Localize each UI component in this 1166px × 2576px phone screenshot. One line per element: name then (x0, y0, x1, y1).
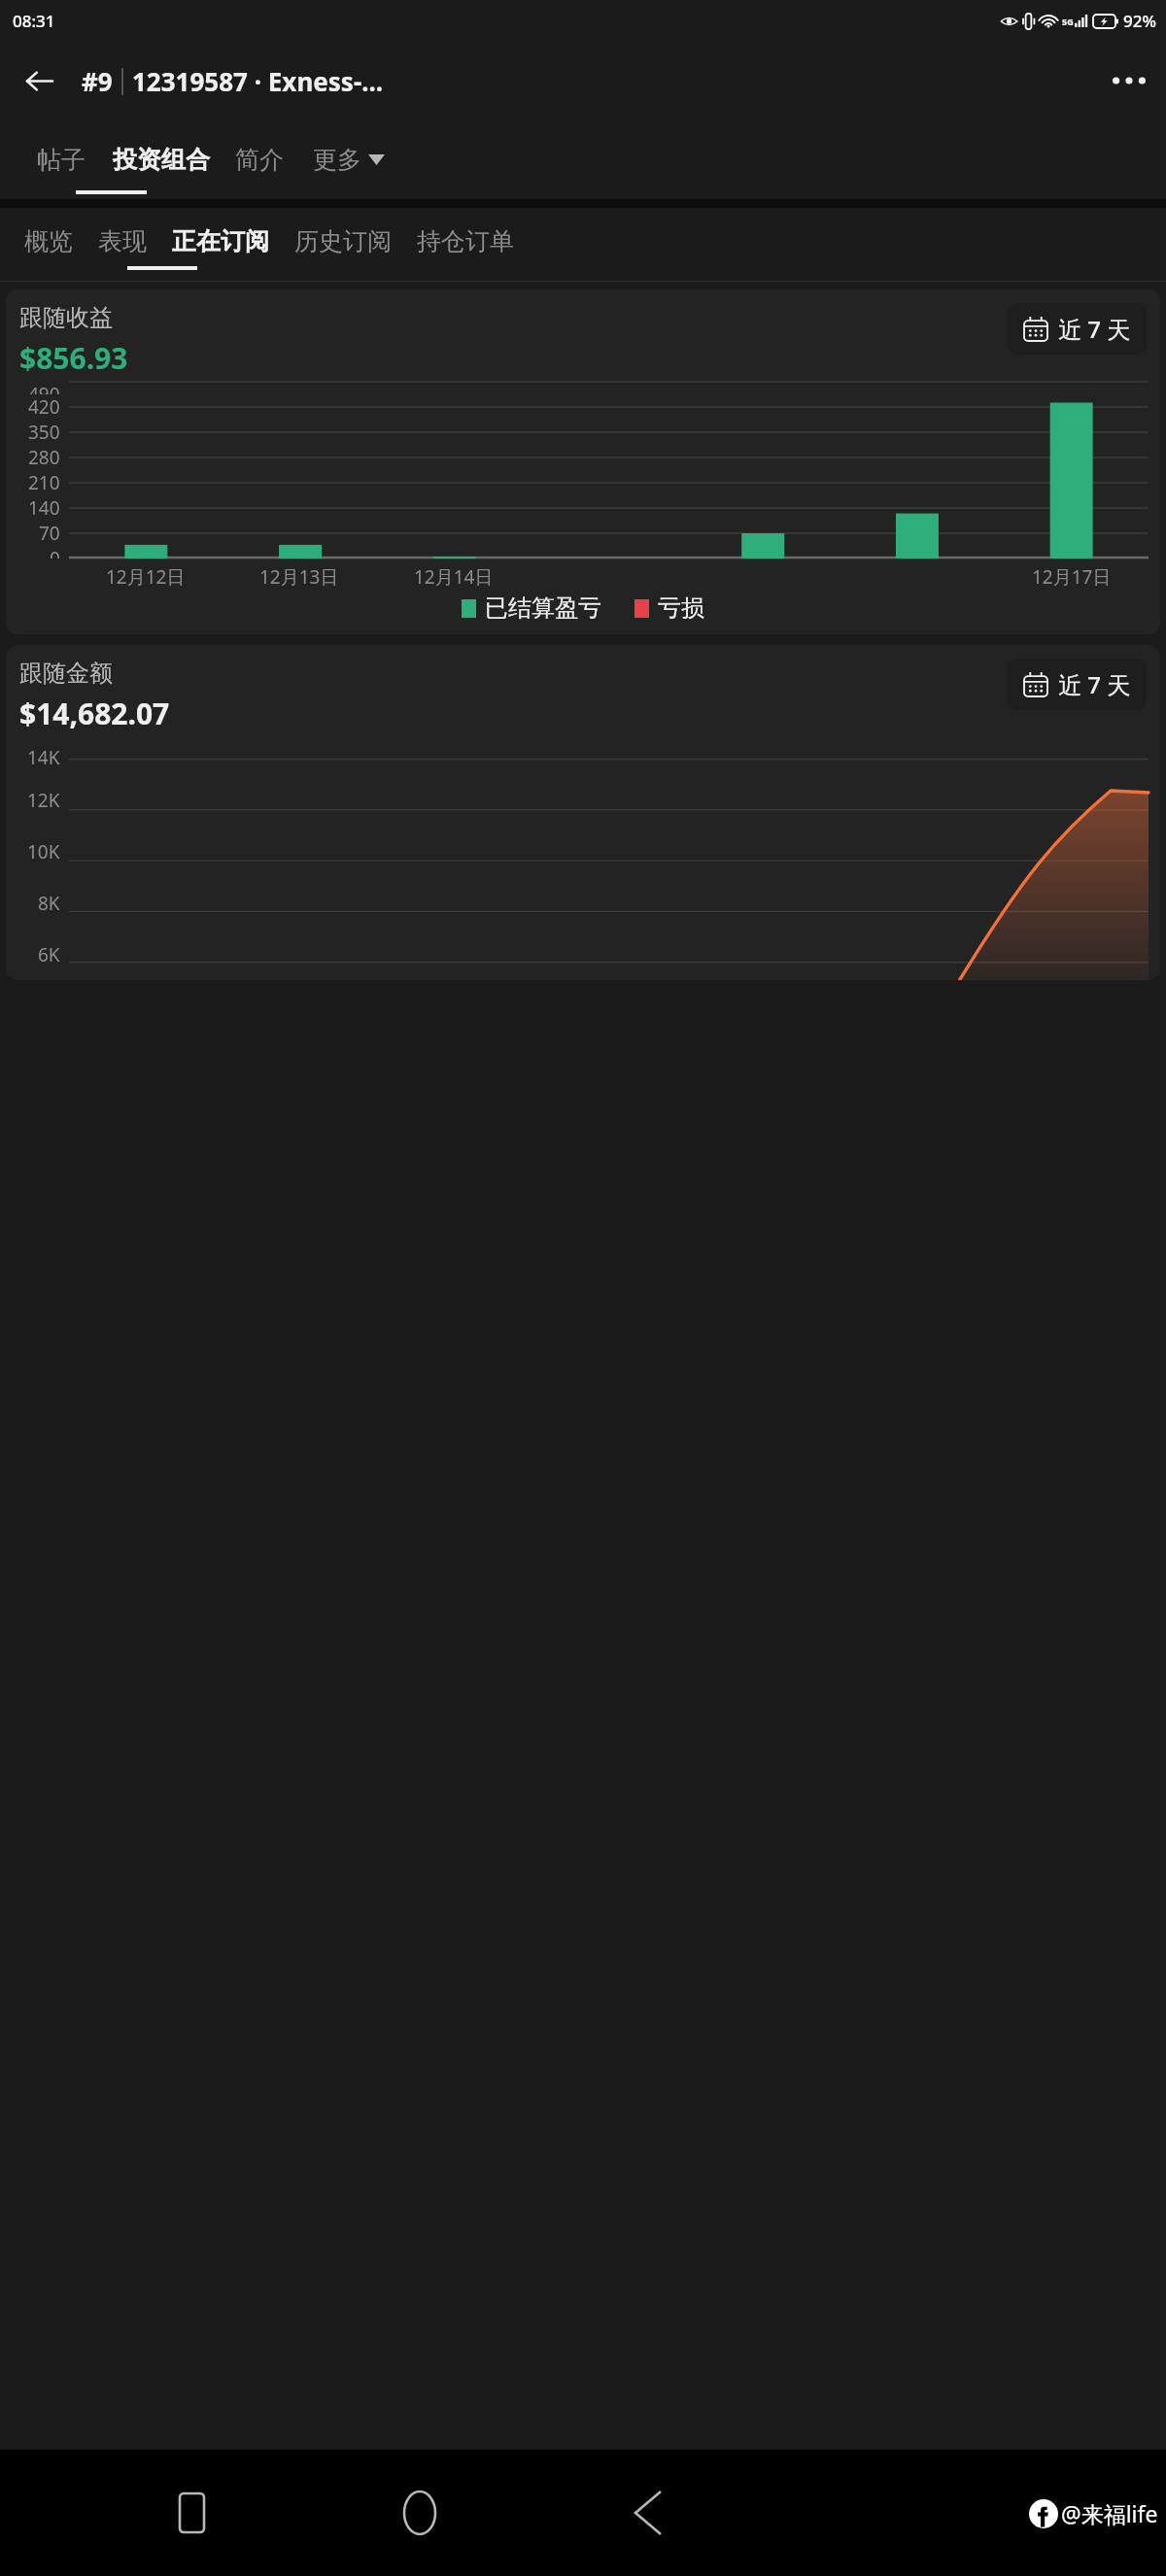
staticText: 140 (28, 495, 60, 521)
staticText: #9 (82, 64, 113, 98)
staticText: 280 (28, 445, 60, 470)
staticText: 已结算盈亏 (485, 593, 601, 623)
button[interactable]: Back (14, 55, 64, 106)
staticText: 近 7 天 (1058, 313, 1131, 345)
staticText: 210 (28, 470, 60, 495)
staticText: 跟随金额 (19, 659, 113, 688)
staticText: 490 (28, 382, 60, 394)
staticText: 12月17日 (1032, 564, 1112, 590)
staticText: $14,682.07 (19, 694, 170, 733)
staticText: 350 (28, 420, 60, 445)
staticText: $856.93 (19, 338, 128, 378)
staticText: 帖子 (37, 145, 86, 175)
staticText: 8K (38, 891, 60, 916)
staticText: 简介 (235, 145, 284, 175)
staticText: 近 7 天 (1058, 668, 1131, 700)
staticText: 12319587 · Exness-... (132, 64, 384, 98)
button[interactable]: 概览 (12, 220, 86, 262)
staticText: 70 (39, 521, 60, 546)
staticText: 12月14日 (414, 564, 494, 590)
staticText: 更多 (313, 145, 361, 175)
staticText: 概览 (24, 226, 73, 256)
button[interactable]: 表现 (86, 220, 159, 262)
staticText: 12K (27, 788, 60, 813)
staticText: 5G (1062, 16, 1074, 27)
staticText: 历史订阅 (294, 226, 392, 256)
button[interactable]: 近 7 天 (1008, 303, 1147, 355)
button[interactable]: Recents (154, 2476, 228, 2550)
staticText: 10K (27, 839, 60, 864)
staticText: 跟随收益 (19, 303, 113, 332)
button[interactable]: 简介 (220, 133, 299, 186)
button[interactable]: 更多 (299, 133, 398, 186)
staticText: @来福life (1061, 2498, 1158, 2528)
staticText: 12月13日 (259, 564, 339, 590)
staticText: 持仓订单 (417, 226, 514, 256)
staticText: 正在订阅 (172, 226, 269, 256)
button[interactable]: 持仓订单 (404, 220, 527, 262)
button[interactable]: Back (611, 2476, 685, 2550)
button[interactable]: 近 7 天 (1008, 659, 1147, 710)
staticText: 投资组合 (113, 145, 210, 175)
staticText: 6K (38, 942, 60, 967)
staticText: 表现 (98, 226, 147, 256)
button[interactable]: 历史订阅 (282, 220, 404, 262)
staticText: 420 (28, 394, 60, 420)
staticText: 亏损 (658, 593, 704, 623)
button[interactable]: 投资组合 (103, 133, 220, 186)
staticText: 92% (1123, 10, 1156, 32)
button[interactable]: 正在订阅 (159, 220, 282, 262)
staticText: 12月12日 (106, 564, 186, 590)
button[interactable]: Home (383, 2476, 457, 2550)
staticText: 14K (27, 745, 60, 770)
button[interactable]: 帖子 (19, 133, 103, 186)
button[interactable]: More options (1102, 53, 1156, 108)
staticText: 0 (50, 546, 60, 559)
staticText: 08:31 (13, 10, 55, 32)
